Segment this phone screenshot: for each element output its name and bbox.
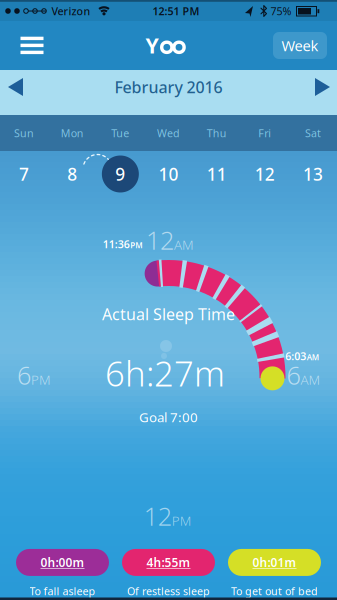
staticText: Sat: [305, 126, 321, 140]
button[interactable]: 7: [2, 152, 46, 196]
staticText: Thu: [207, 126, 227, 140]
button[interactable]: 4h:55m: [122, 549, 215, 576]
staticText: To get out of bed: [231, 584, 318, 598]
staticText: Goal 7:00: [139, 408, 198, 426]
button[interactable]: 12: [243, 152, 287, 196]
button[interactable]: 0h:00m: [16, 549, 109, 576]
button[interactable]: 9: [98, 152, 142, 196]
staticText: Tue: [111, 126, 129, 140]
staticText: 6: [17, 358, 31, 392]
staticText: Fri: [258, 126, 271, 140]
button[interactable]: 13: [291, 152, 335, 196]
staticText: 6:03: [285, 349, 306, 363]
staticText: AM: [307, 352, 319, 362]
button[interactable]: 0h:01m: [228, 549, 321, 576]
staticText: Wed: [157, 126, 180, 140]
staticText: Sun: [14, 126, 34, 140]
staticText: 7: [19, 162, 29, 185]
staticText: 11:36: [103, 237, 130, 251]
button[interactable]: 8: [50, 152, 94, 196]
staticText: 8: [67, 162, 77, 185]
staticText: 11: [207, 162, 227, 185]
staticText: 6h:27m: [105, 350, 225, 396]
staticText: Of restless sleep: [127, 584, 210, 598]
staticText: 12:51 PM: [152, 4, 199, 18]
staticText: 13: [303, 162, 323, 185]
staticText: PM: [172, 512, 192, 529]
staticText: Mon: [61, 126, 84, 140]
button[interactable]: Previous month: [0, 69, 31, 104]
staticText: Week: [281, 36, 318, 55]
staticText: 12: [146, 223, 174, 257]
staticText: 12: [144, 499, 172, 533]
button[interactable]: Menu: [6, 26, 54, 64]
staticText: 4h:55m: [146, 554, 190, 570]
staticText: February 2016: [114, 76, 222, 98]
staticText: 0h:01m: [252, 554, 296, 570]
staticText: Verizon: [51, 4, 90, 18]
staticText: 12: [255, 162, 275, 185]
staticText: 9: [115, 162, 125, 185]
staticText: Y: [145, 31, 158, 59]
staticText: To fall asleep: [29, 584, 95, 598]
staticText: 0h:00m: [40, 554, 84, 570]
staticText: 6: [286, 358, 300, 392]
button[interactable]: 11: [195, 152, 239, 196]
staticText: PM: [130, 240, 142, 250]
staticText: 75%: [270, 4, 291, 18]
staticText: PM: [31, 371, 51, 388]
staticText: AM: [174, 236, 194, 253]
button[interactable]: Week: [273, 32, 327, 59]
staticText: Actual Sleep Time: [102, 303, 235, 325]
button[interactable]: Next month: [307, 69, 337, 104]
button[interactable]: 10: [146, 152, 190, 196]
staticText: AM: [300, 371, 320, 388]
staticText: 10: [158, 162, 178, 185]
